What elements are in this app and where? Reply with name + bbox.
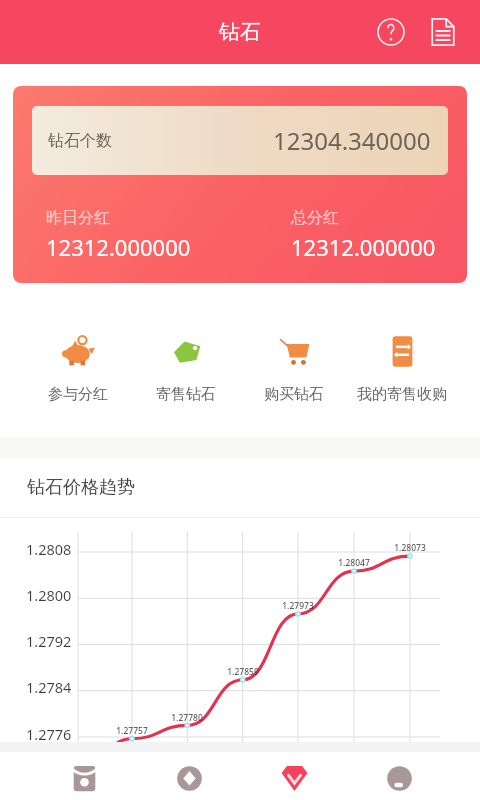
button[interactable]: Diamond [242,752,347,800]
staticText: 1.27757 [116,725,148,737]
staticText: 1.2800 [26,585,72,605]
button[interactable]: Help [361,0,420,64]
staticText: 1.2776 [26,724,72,744]
staticText: 1.2808 [26,539,72,559]
staticText: 1.27859 [227,666,259,678]
staticText: 昨日分红 [46,208,110,228]
button[interactable]: Treasure [32,752,137,800]
button[interactable]: 钻石个数 [13,86,467,283]
staticText: 12304.340000 [273,124,431,157]
staticText: 寄售钻石 [156,385,216,404]
staticText: 1.2792 [26,631,72,651]
staticText: 12312.000000 [46,232,191,262]
button[interactable]: 参与分红 [24,335,132,404]
staticText: 钻石个数 [48,131,112,151]
button[interactable]: 寄售钻石 [132,335,240,404]
button[interactable]: Records [420,0,466,64]
staticText: 钻石价格趋势 [27,476,135,499]
staticText: 1.27780 [171,712,203,724]
staticText: 购买钻石 [264,385,324,404]
button[interactable]: Profile [347,752,452,800]
staticText: 1.28047 [338,557,370,569]
staticText: 总分红 [291,208,339,228]
staticText: 钻石 [219,19,261,45]
button[interactable]: Market [137,752,242,800]
staticText: 1.2784 [26,677,72,697]
staticText: 12312.000000 [291,232,436,262]
staticText: 1.27973 [282,600,314,612]
button[interactable]: 我的寄售收购 [348,335,456,404]
staticText: 1.28073 [394,542,426,554]
staticText: 参与分红 [48,385,108,404]
staticText: 我的寄售收购 [357,385,447,404]
button[interactable]: 购买钻石 [240,335,348,404]
